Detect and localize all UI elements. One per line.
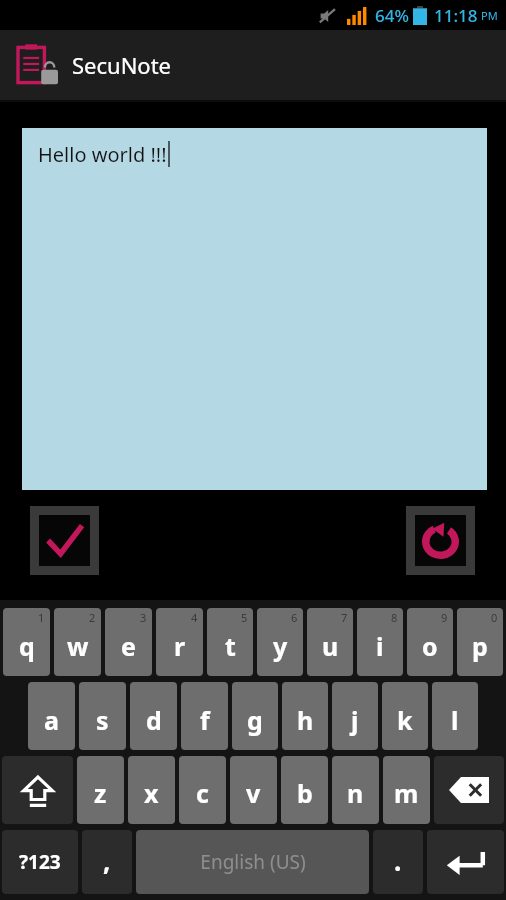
button[interactable]: m [383, 756, 430, 824]
staticText: 64% [375, 4, 409, 27]
button[interactable]: English (US) [136, 830, 369, 894]
staticText: 9 [441, 610, 448, 625]
button[interactable]: 9 [407, 608, 453, 676]
staticText: , [103, 843, 111, 878]
staticText: v [246, 776, 261, 810]
button[interactable]: x [128, 756, 175, 824]
staticText: SecuNote [72, 50, 172, 80]
staticText: q [19, 629, 35, 663]
button[interactable]: g [232, 682, 278, 750]
button[interactable]: Reset note [415, 515, 466, 566]
staticText: y [273, 629, 288, 663]
staticText: g [247, 703, 263, 737]
staticText: i [376, 629, 384, 663]
staticText: e [121, 629, 136, 663]
staticText: 2 [89, 610, 96, 625]
staticText: 1 [38, 610, 45, 625]
staticText: o [422, 629, 438, 663]
button[interactable]: k [382, 682, 428, 750]
staticText: 3 [140, 610, 147, 625]
button[interactable]: 6 [257, 608, 303, 676]
staticText: h [297, 703, 314, 737]
button[interactable]: Shift [2, 756, 73, 824]
staticText: z [94, 776, 107, 810]
staticText: English (US) [200, 849, 306, 875]
staticText: n [347, 776, 364, 810]
staticText: b [297, 776, 313, 810]
button[interactable]: c [179, 756, 226, 824]
staticText: l [451, 703, 459, 737]
staticText: ?123 [19, 849, 61, 875]
button[interactable]: s [79, 682, 126, 750]
button[interactable]: v [230, 756, 277, 824]
button[interactable]: 0 [457, 608, 503, 676]
staticText: 6 [291, 610, 298, 625]
staticText: w [67, 629, 89, 663]
staticText: Hello world !!! [38, 141, 167, 168]
button[interactable]: b [281, 756, 328, 824]
staticText: 5 [241, 610, 248, 625]
staticText: 11:18 [434, 4, 478, 27]
staticText: f [200, 703, 210, 737]
button[interactable]: Delete [434, 756, 504, 824]
staticText: k [397, 703, 413, 737]
staticText: d [146, 703, 162, 737]
button[interactable]: 1 [3, 608, 50, 676]
staticText: s [96, 703, 109, 737]
staticText: p [472, 629, 488, 663]
staticText: x [144, 776, 159, 810]
button[interactable]: d [130, 682, 177, 750]
button[interactable]: n [332, 756, 379, 824]
button[interactable]: 2 [54, 608, 101, 676]
staticText: c [196, 776, 209, 810]
button[interactable]: Save note [39, 515, 90, 566]
staticText: PM [481, 8, 498, 23]
staticText: j [351, 703, 359, 737]
button[interactable]: Hello world !!! [22, 128, 487, 490]
button[interactable]: z [77, 756, 124, 824]
staticText: 7 [341, 610, 348, 625]
button[interactable]: ?123 [2, 830, 78, 894]
staticText: t [225, 629, 236, 663]
button[interactable]: j [332, 682, 378, 750]
staticText: a [44, 703, 59, 737]
button[interactable]: 7 [307, 608, 353, 676]
button[interactable]: f [181, 682, 228, 750]
button[interactable]: l [432, 682, 478, 750]
button[interactable]: h [282, 682, 328, 750]
staticText: 0 [491, 610, 498, 625]
staticText: r [174, 629, 186, 663]
button[interactable]: a [28, 682, 75, 750]
button[interactable]: . [373, 830, 423, 894]
button[interactable]: , [82, 830, 132, 894]
button[interactable]: Enter [427, 830, 504, 894]
staticText: 8 [391, 610, 398, 625]
staticText: m [394, 776, 419, 810]
staticText: 4 [191, 610, 198, 625]
staticText: u [322, 629, 339, 663]
button[interactable]: 3 [105, 608, 152, 676]
staticText: . [394, 843, 402, 878]
button[interactable]: 4 [156, 608, 203, 676]
button[interactable]: 8 [357, 608, 403, 676]
button[interactable]: 5 [207, 608, 253, 676]
